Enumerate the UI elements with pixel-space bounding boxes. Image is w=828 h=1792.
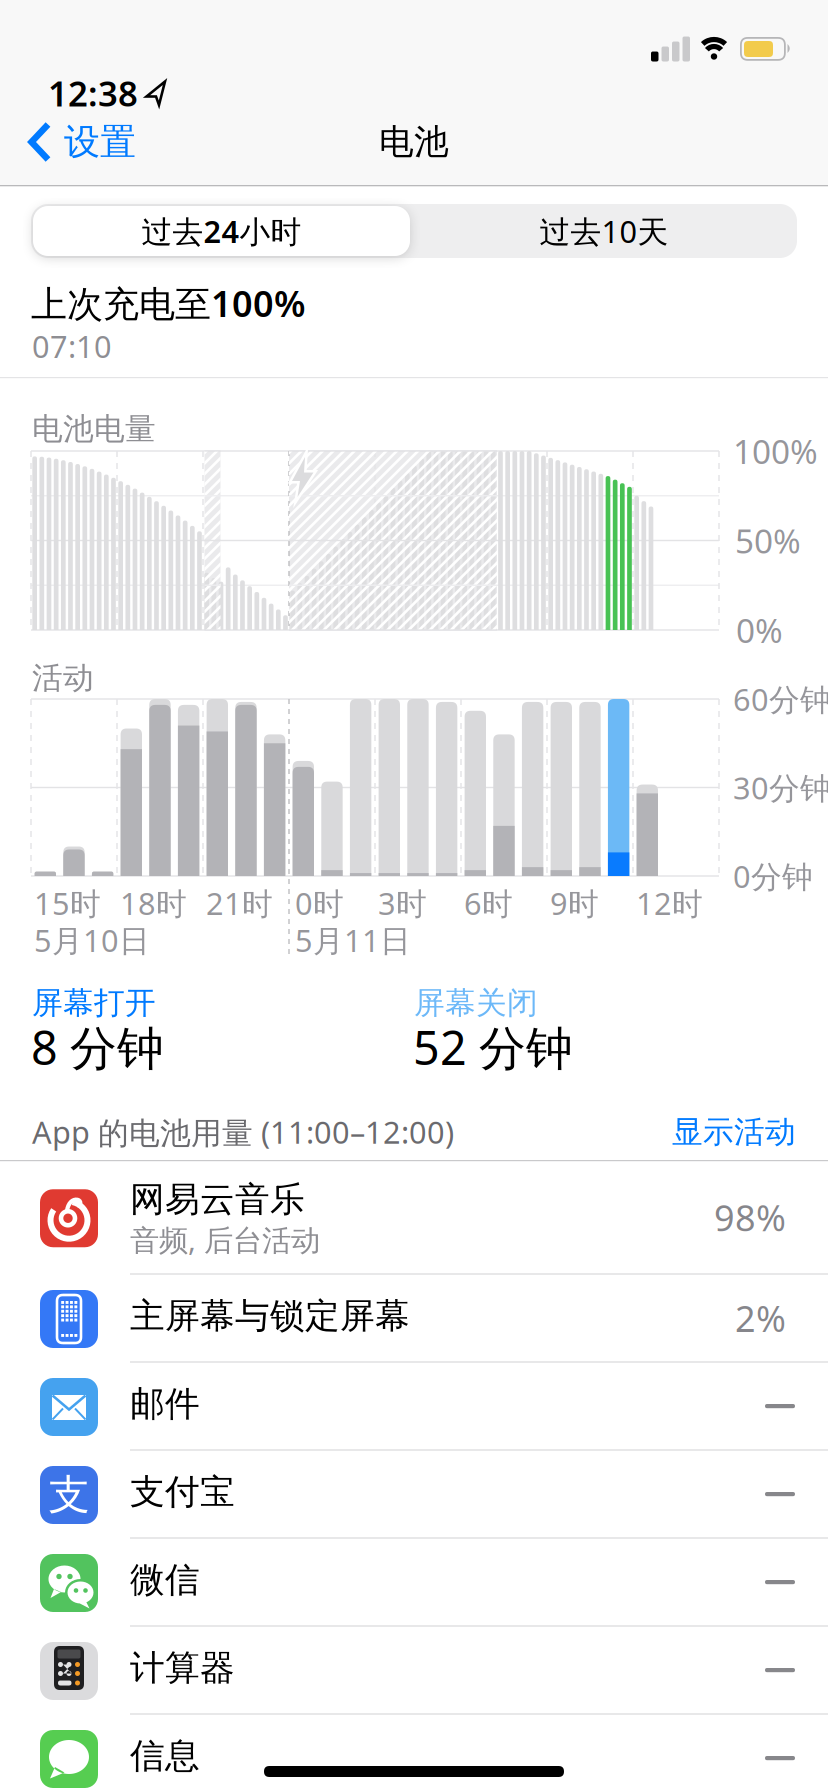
staticText: 音频, 后台活动 bbox=[130, 1220, 320, 1259]
staticText: 微信 bbox=[130, 1559, 200, 1601]
staticText: 信息 bbox=[130, 1735, 200, 1777]
staticText: 60分钟 bbox=[733, 679, 828, 719]
staticText: 活动 bbox=[32, 659, 94, 697]
staticText: 6时 bbox=[464, 883, 513, 923]
button[interactable]: 微信 bbox=[0, 1538, 828, 1626]
staticText: 52 分钟 bbox=[413, 1016, 573, 1078]
staticText: 12:38 bbox=[48, 70, 138, 116]
button[interactable]: 计算器 bbox=[0, 1626, 828, 1714]
staticText: 5月11日 bbox=[295, 920, 411, 960]
staticText: 21时 bbox=[206, 883, 273, 923]
staticText: 支付宝 bbox=[130, 1471, 235, 1513]
staticText: 0时 bbox=[295, 883, 344, 923]
button[interactable]: 过去24小时 bbox=[33, 206, 410, 256]
staticText: 0% bbox=[736, 608, 783, 652]
staticText: 网易云音乐 bbox=[130, 1178, 305, 1221]
staticText: 过去24小时 bbox=[141, 211, 301, 251]
staticText: 15时 bbox=[34, 883, 101, 923]
staticText: 屏幕关闭 bbox=[414, 984, 538, 1022]
button[interactable]: 邮件 bbox=[0, 1362, 828, 1450]
button[interactable]: 网易云音乐 bbox=[0, 1160, 828, 1274]
staticText: 上次充电至100% bbox=[31, 279, 306, 327]
button[interactable]: 主屏幕与锁定屏幕 bbox=[0, 1274, 828, 1362]
staticText: 30分钟 bbox=[733, 767, 828, 808]
staticText: 9时 bbox=[550, 883, 599, 923]
staticText: 电池 bbox=[379, 121, 449, 163]
staticText: 100% bbox=[733, 429, 818, 473]
staticText: 8 分钟 bbox=[31, 1016, 164, 1078]
staticText: 07:10 bbox=[32, 326, 112, 366]
button[interactable]: 显示活动 bbox=[556, 1100, 796, 1164]
staticText: 2% bbox=[735, 1294, 786, 1342]
staticText: 支 bbox=[48, 1470, 89, 1520]
staticText: 0分钟 bbox=[733, 856, 813, 896]
button[interactable]: 过去10天 bbox=[414, 206, 794, 256]
staticText: 电池电量 bbox=[32, 410, 156, 448]
staticText: 18时 bbox=[120, 883, 187, 923]
staticText: 主屏幕与锁定屏幕 bbox=[130, 1295, 410, 1337]
button[interactable]: 设置 bbox=[28, 110, 136, 174]
button[interactable]: 信息 bbox=[0, 1714, 828, 1792]
staticText: 3时 bbox=[378, 883, 427, 923]
staticText: 设置 bbox=[64, 120, 136, 164]
button[interactable]: 支 bbox=[0, 1450, 828, 1538]
staticText: 过去10天 bbox=[539, 211, 668, 251]
staticText: 邮件 bbox=[130, 1383, 200, 1425]
staticText: 5月10日 bbox=[34, 920, 150, 960]
staticText: 屏幕打开 bbox=[32, 984, 156, 1022]
staticText: 12时 bbox=[636, 883, 703, 923]
staticText: 50% bbox=[735, 518, 801, 563]
staticText: 98% bbox=[714, 1193, 786, 1241]
staticText: 计算器 bbox=[130, 1647, 235, 1689]
staticText: 显示活动 bbox=[672, 1113, 796, 1151]
staticText: App 的电池用量 (11:00–12:00) bbox=[32, 1112, 454, 1152]
